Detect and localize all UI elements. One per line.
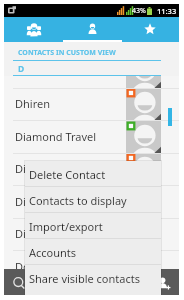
staticText: 11:33 [157,6,177,16]
button[interactable]: Add contact [153,272,175,294]
button[interactable]: Dipak [4,153,179,186]
staticText: Dolly [15,259,41,274]
button[interactable]: Contacts to display [25,187,161,213]
staticText: Divya [15,194,44,209]
button[interactable]: Search [8,272,30,294]
staticText: D [18,63,25,75]
button[interactable]: Delete Contact [25,161,161,187]
button[interactable]: Dolly [4,251,179,284]
staticText: Dhiren [15,96,50,111]
staticText: CONTACTS IN CUSTOM VIEW [18,48,116,58]
staticText: Delete Contact [29,167,106,182]
staticText: Share visible contacts [29,271,140,286]
button[interactable] [4,56,179,89]
button[interactable]: Import/export [25,213,161,239]
button[interactable]: Accounts [25,239,161,265]
staticText: Dipak [15,161,45,176]
button[interactable]: Diamond Travel [4,121,179,154]
button[interactable]: Dhiren [4,88,179,121]
staticText: Import/export [29,219,103,234]
staticText: Diamond Travel [15,129,97,144]
button[interactable]: Share visible contacts [25,265,161,291]
button[interactable]: Dinesh [4,218,179,251]
staticText: Accounts [29,245,77,260]
staticText: Contacts to display [29,193,127,208]
staticText: 43% [132,6,146,16]
staticText: Dinesh [15,226,51,241]
button[interactable]: Divya [4,186,179,219]
button[interactable]: Favourites [121,17,179,42]
staticText: Dharmesh [15,291,70,295]
button[interactable]: Groups [4,17,63,42]
button[interactable]: Contacts [63,17,121,42]
button[interactable]: Dharmesh [4,283,179,295]
